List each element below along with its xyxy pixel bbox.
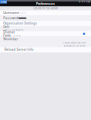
button[interactable]: Display: [0, 31, 91, 36]
staticText: Username: [3, 11, 19, 15]
staticText: Display: [3, 30, 15, 34]
staticText: 9:41 AM: [79, 0, 90, 3]
staticText: Options for this account: [33, 7, 58, 10]
staticText: Metric, kilometres: [3, 29, 23, 32]
staticText: Back: [1, 0, 6, 3]
staticText: Password: [3, 16, 18, 20]
button[interactable]: Back: [0, 0, 7, 4]
button[interactable]: First Weekday: [0, 36, 91, 42]
button[interactable]: Reload Server Info: [0, 47, 91, 52]
staticText: Values shown here are: [62, 41, 85, 44]
staticText: provided by the server: [63, 44, 85, 47]
staticText: Compact listing: [3, 34, 20, 37]
staticText: First Weekday: [3, 34, 18, 41]
staticText: Organisation Settings: [3, 22, 37, 25]
staticText: Reload Server Info: [5, 48, 34, 51]
button[interactable]: Unit: [0, 26, 91, 31]
staticText: Preferences: [36, 2, 55, 6]
staticText: Unit: [3, 25, 9, 29]
